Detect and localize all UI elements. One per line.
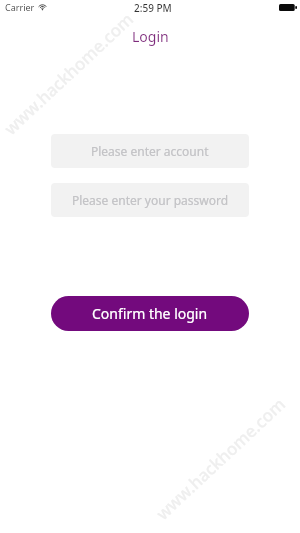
staticText: Confirm the login (92, 304, 208, 323)
button[interactable]: Login (132, 27, 169, 46)
staticText: Please enter your password (72, 192, 229, 208)
staticText: Carrier (5, 1, 35, 13)
button[interactable]: Please enter your password (51, 183, 249, 217)
other: Battery full (279, 4, 297, 11)
staticText: Login (132, 27, 169, 46)
staticText: www.hackhome.com (0, 7, 138, 140)
button[interactable]: Please enter account (51, 134, 249, 168)
button[interactable]: Confirm the login (51, 296, 249, 331)
staticText: 2:59 PM (134, 1, 172, 15)
staticText: Please enter account (91, 143, 209, 159)
other: Wi-Fi signal (38, 3, 47, 10)
